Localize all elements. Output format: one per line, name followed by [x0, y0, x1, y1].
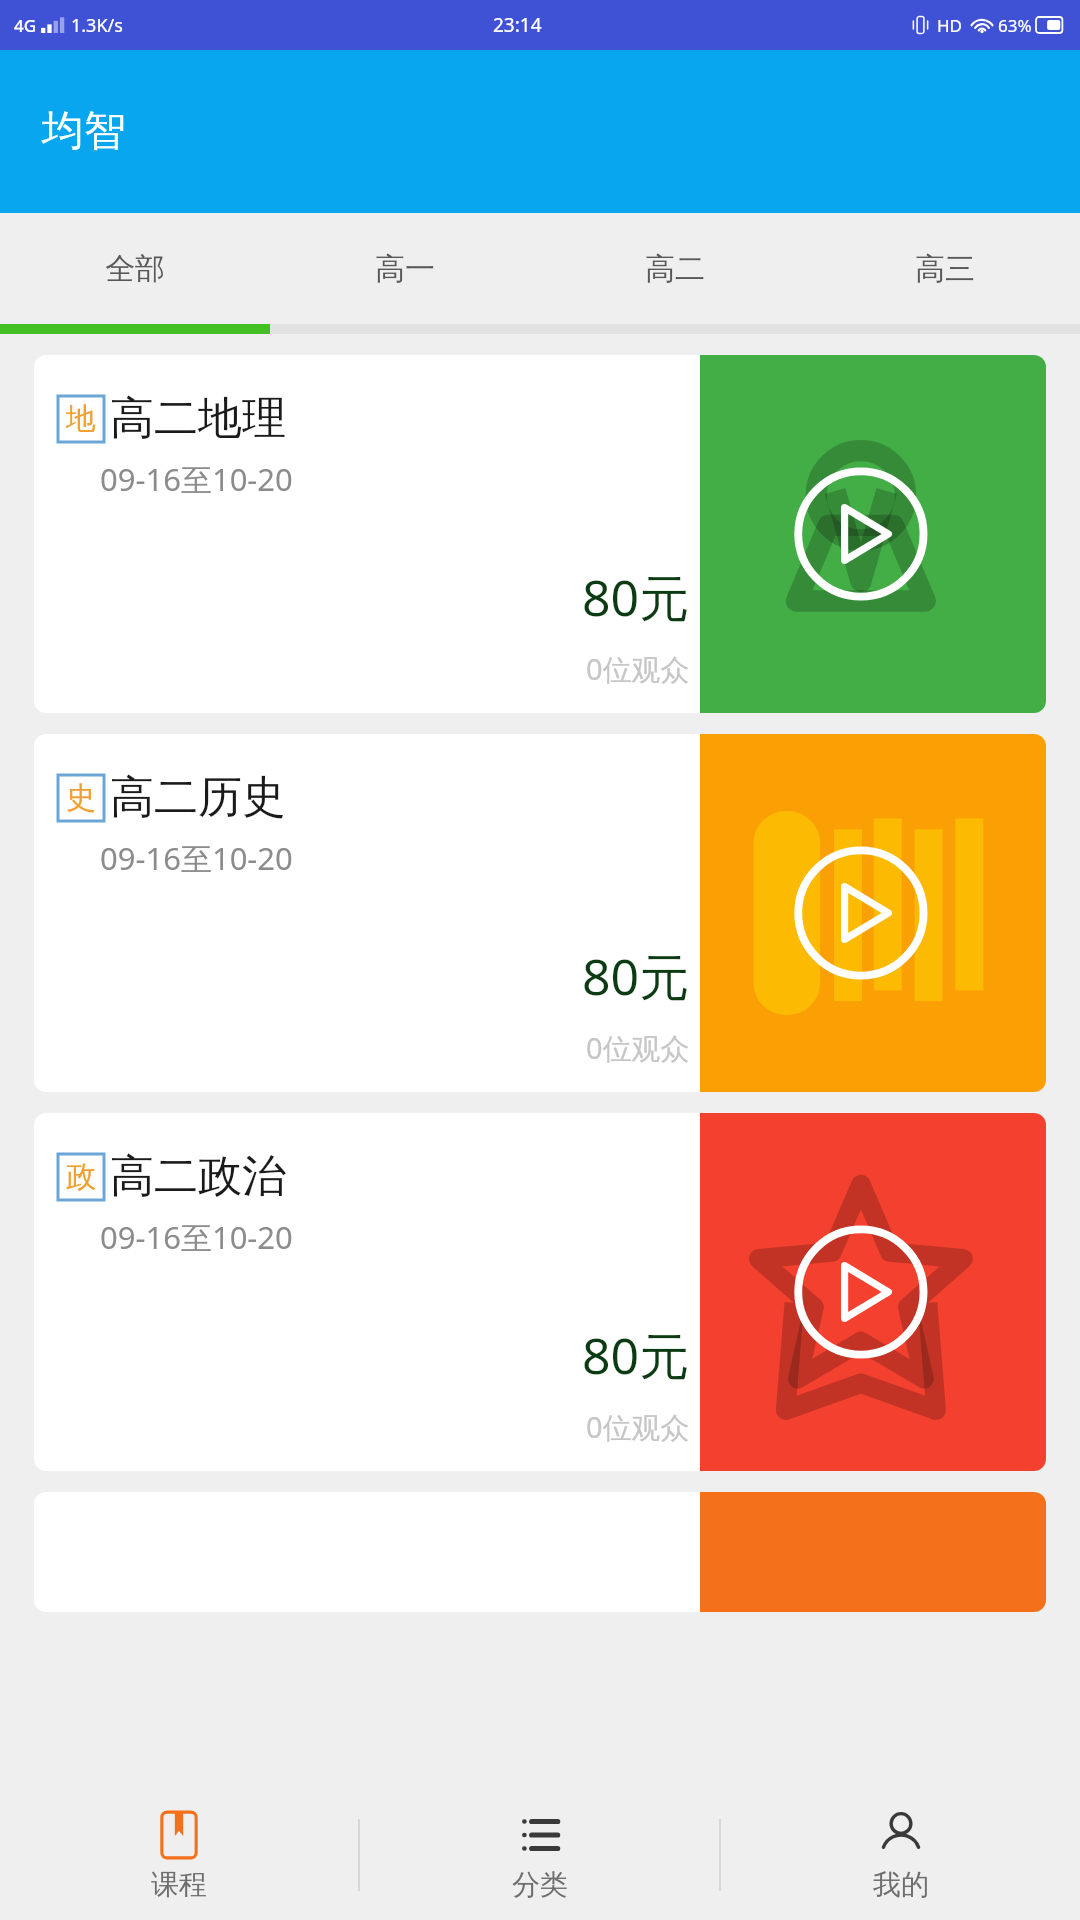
staticText: 全部	[105, 250, 165, 288]
staticText: 高二	[645, 250, 705, 288]
staticText: 课程	[151, 1867, 207, 1902]
staticText: 4G	[14, 14, 37, 37]
button[interactable]: 高一	[270, 213, 540, 324]
staticText: 分类	[512, 1867, 568, 1902]
staticText: 09-16至10-20	[100, 837, 293, 879]
staticText: 09-16至10-20	[100, 1216, 293, 1258]
button[interactable]: 地	[34, 355, 1046, 713]
staticText: 政	[66, 1158, 96, 1196]
staticText: 23:14	[493, 12, 542, 38]
staticText: 高一	[375, 250, 435, 288]
staticText: 高三	[915, 250, 975, 288]
button[interactable]: 史	[34, 734, 1046, 1092]
staticText: 高二地理	[110, 391, 286, 446]
staticText: 80元	[582, 1321, 690, 1389]
button[interactable]: 我的	[721, 1790, 1080, 1920]
staticText: 63%	[998, 14, 1032, 37]
staticText: 均智	[42, 105, 126, 158]
staticText: 史	[66, 779, 96, 817]
staticText: 高二政治	[110, 1149, 286, 1204]
staticText: 80元	[582, 563, 690, 631]
button[interactable]: 高二	[540, 213, 810, 324]
button[interactable]: 高三	[810, 213, 1080, 324]
staticText: 0位观众	[586, 649, 690, 689]
button[interactable]	[34, 1492, 1046, 1612]
button[interactable]: 分类	[360, 1790, 719, 1920]
staticText: HD	[937, 14, 963, 37]
staticText: 80元	[582, 942, 690, 1010]
staticText: 0位观众	[586, 1028, 690, 1068]
staticText: 高二历史	[110, 770, 286, 825]
staticText: 09-16至10-20	[100, 458, 293, 500]
button[interactable]: 全部	[0, 213, 270, 324]
button[interactable]: 政	[34, 1113, 1046, 1471]
staticText: 1.3K/s	[71, 13, 123, 38]
button[interactable]: 课程	[0, 1790, 358, 1920]
staticText: 我的	[873, 1867, 929, 1902]
staticText: 地	[66, 400, 96, 438]
staticText: 0位观众	[586, 1407, 690, 1447]
